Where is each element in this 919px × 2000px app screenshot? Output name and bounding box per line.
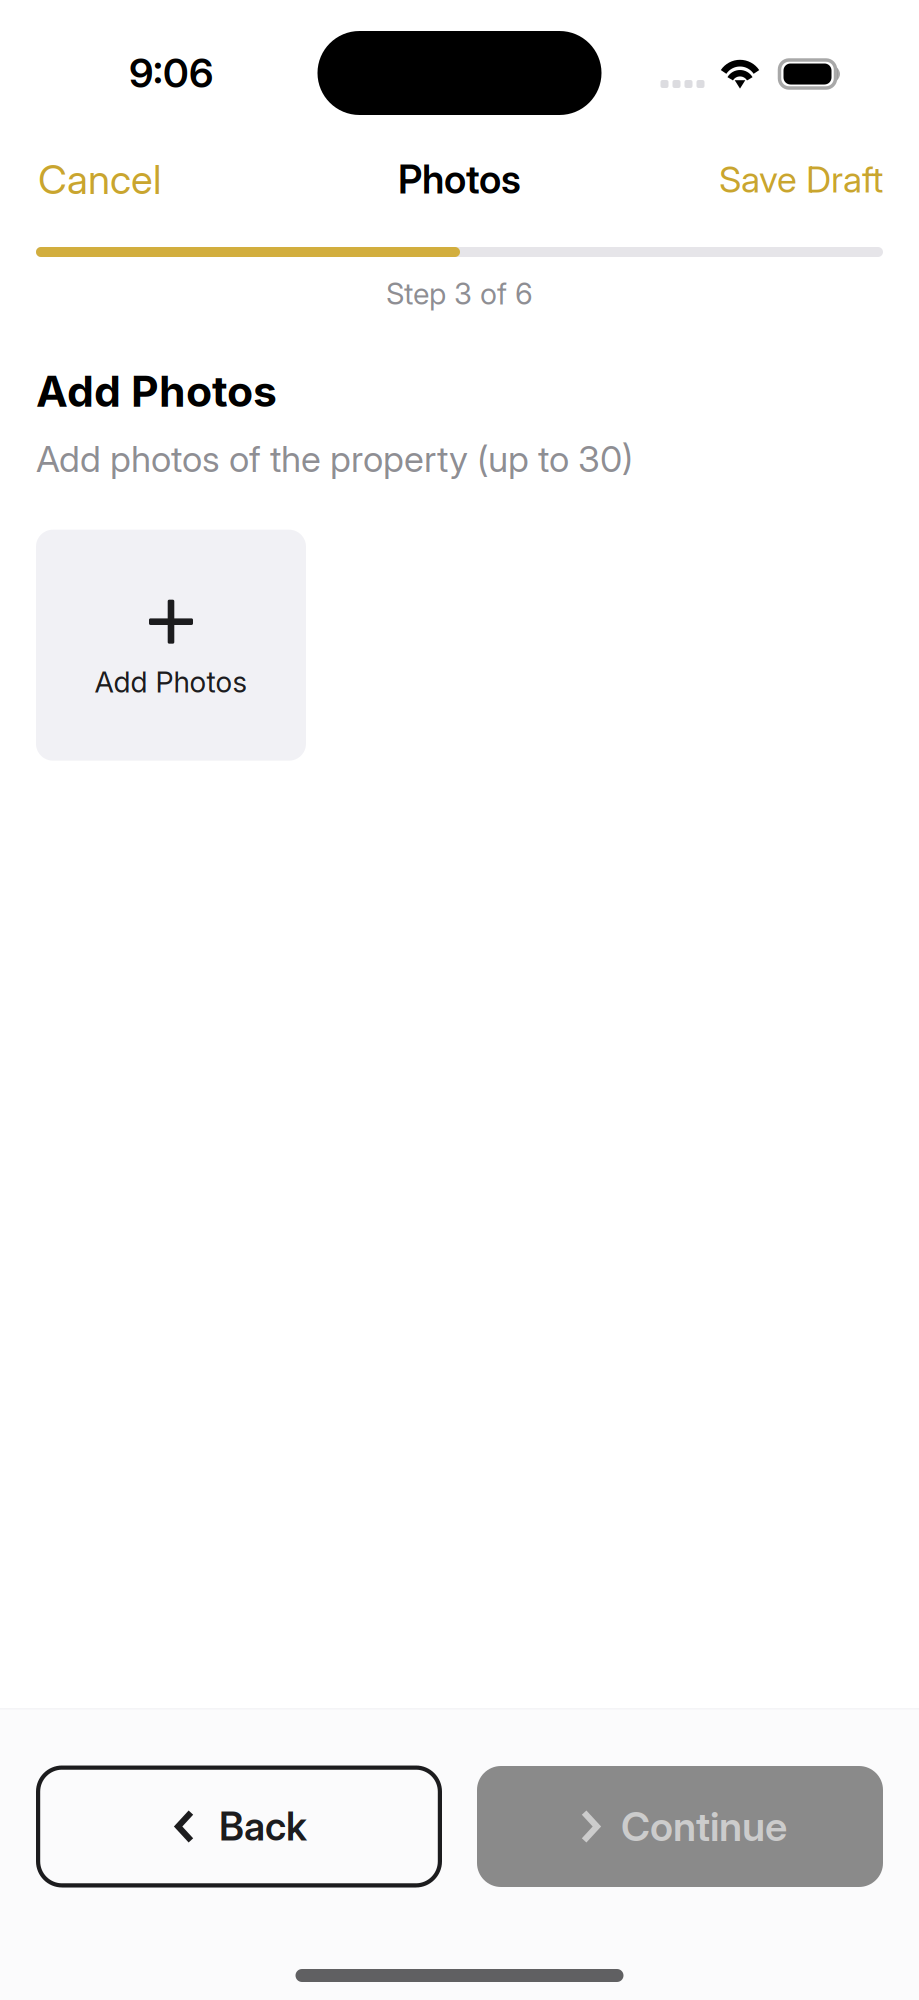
staticText: Step 3 of 6 — [386, 276, 533, 311]
staticText: Save Draft — [719, 158, 883, 201]
staticText: Continue — [621, 1802, 787, 1851]
button[interactable]: Continue — [477, 1766, 883, 1887]
staticText: 9:06 — [129, 49, 213, 97]
staticText: Back — [219, 1803, 307, 1850]
button[interactable]: Cancel — [0, 143, 181, 216]
button[interactable]: Save Draft — [699, 146, 919, 213]
button[interactable]: Back — [36, 1765, 442, 1887]
staticText: Add photos of the property (up to 30) — [36, 437, 633, 481]
staticText: Add Photos — [94, 665, 247, 699]
staticText: Photos — [398, 156, 521, 203]
staticText: Cancel — [38, 155, 161, 204]
button[interactable]: Add Photos — [36, 530, 306, 761]
staticText: Add Photos — [36, 365, 277, 417]
